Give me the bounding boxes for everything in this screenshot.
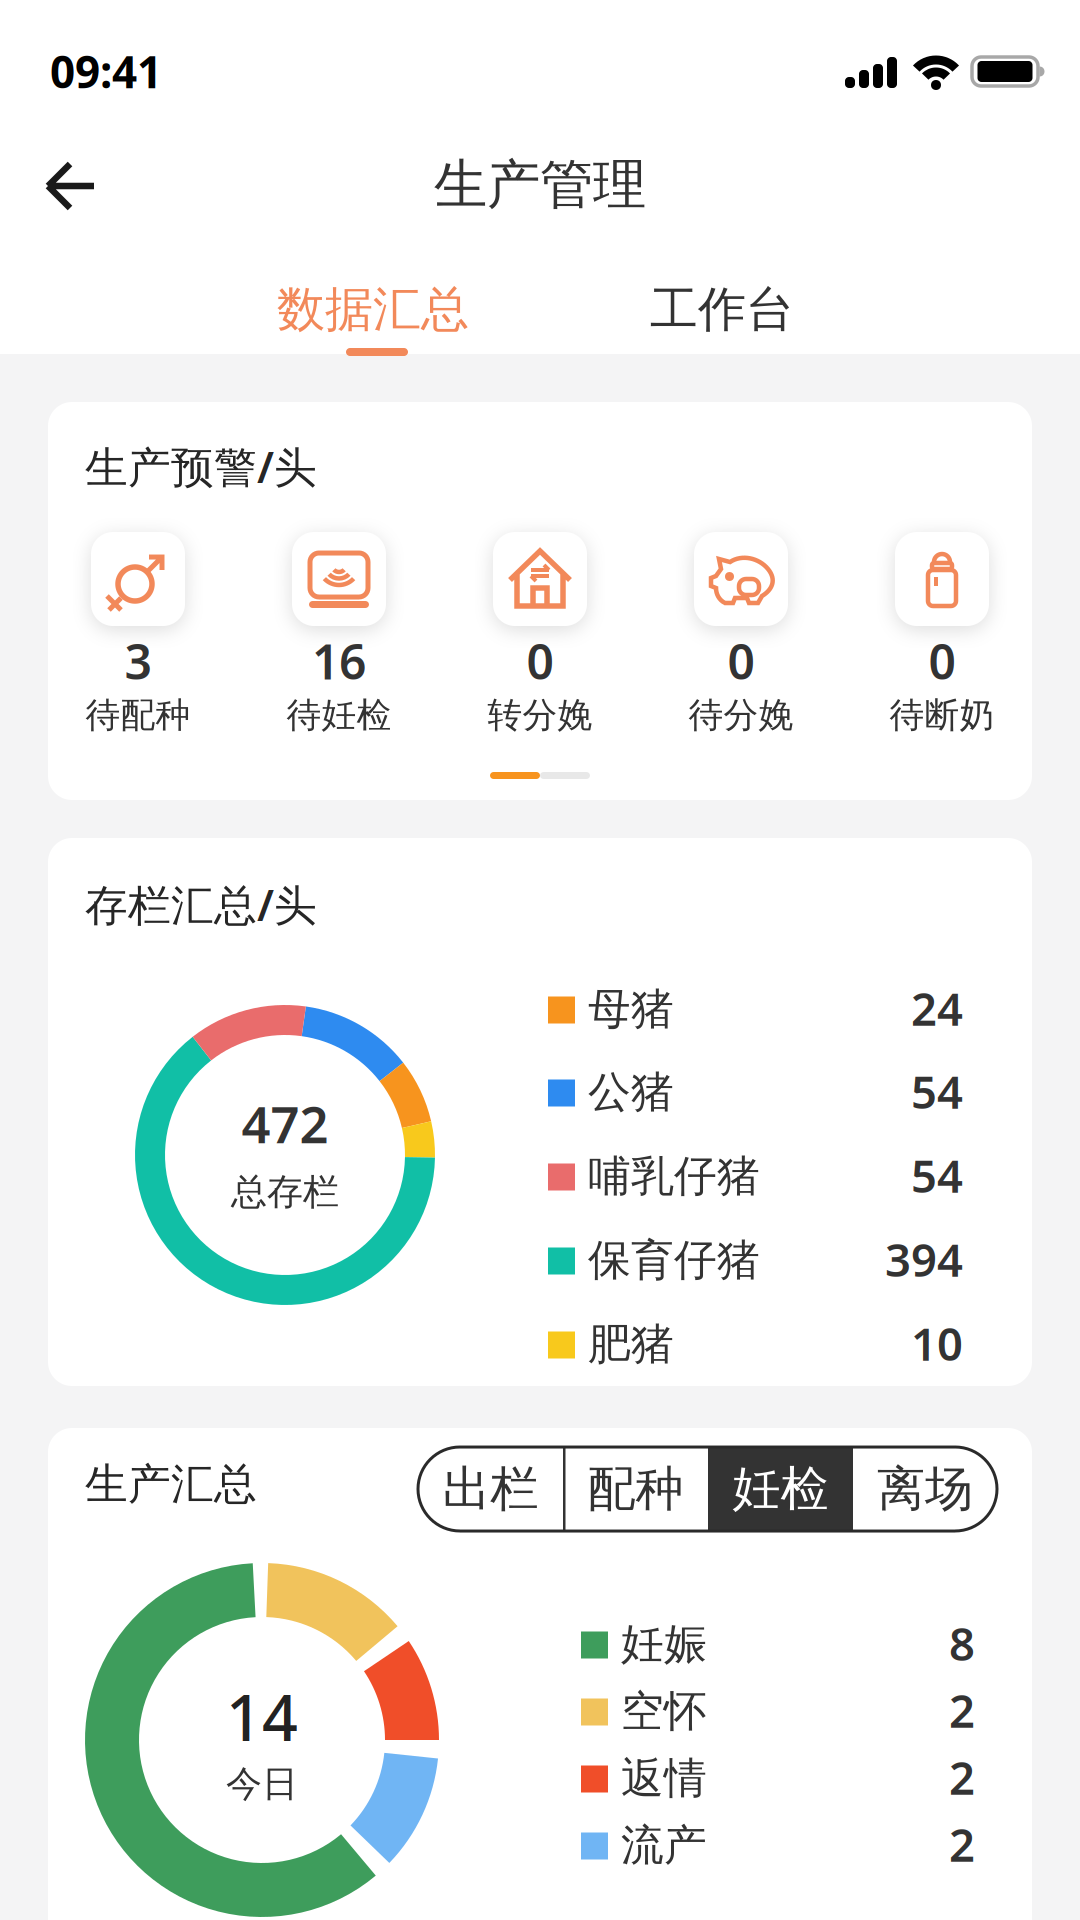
staticText: 母猪: [588, 983, 674, 1035]
staticText: 生产汇总: [85, 1458, 257, 1510]
button[interactable]: 数据汇总: [243, 280, 503, 339]
staticText: 10: [911, 1313, 963, 1373]
staticText: 保育仔猪: [588, 1234, 760, 1286]
staticText: 2: [949, 1680, 975, 1740]
staticText: 空怀: [621, 1685, 707, 1737]
staticText: 数据汇总: [277, 280, 469, 339]
staticText: 出栏: [442, 1459, 538, 1518]
staticText: 24: [911, 978, 963, 1038]
button[interactable]: 配种: [563, 1447, 708, 1531]
staticText: 配种: [587, 1459, 683, 1518]
staticText: 待妊检: [286, 694, 391, 737]
button[interactable]: 待妊检: [259, 532, 419, 742]
staticText: 待配种: [85, 694, 190, 737]
staticText: 妊娠: [621, 1618, 707, 1670]
staticText: 2: [949, 1747, 975, 1807]
staticText: 工作台: [650, 280, 794, 339]
button[interactable]: 待分娩: [661, 532, 821, 742]
button[interactable]: 出栏: [418, 1447, 563, 1531]
staticText: 16: [312, 629, 366, 693]
staticText: 今日: [226, 1762, 298, 1806]
staticText: 存栏汇总/头: [85, 876, 317, 933]
staticText: 生产预警/头: [85, 438, 317, 495]
staticText: 8: [949, 1613, 975, 1673]
staticText: 返情: [621, 1752, 707, 1804]
staticText: 妊检: [732, 1459, 828, 1518]
staticText: 54: [911, 1061, 963, 1121]
staticText: 公猪: [588, 1066, 674, 1118]
button[interactable]: 待断奶: [862, 532, 1022, 742]
button[interactable]: 工作台: [612, 280, 832, 339]
staticText: 394: [885, 1229, 963, 1289]
staticText: 哺乳仔猪: [588, 1150, 760, 1202]
staticText: 0: [526, 629, 553, 693]
staticText: 09:41: [50, 42, 162, 100]
staticText: 0: [727, 629, 754, 693]
staticText: 0: [928, 629, 955, 693]
staticText: 流产: [621, 1819, 707, 1871]
button[interactable]: 待配种: [58, 532, 218, 742]
staticText: 待断奶: [889, 694, 994, 737]
button[interactable]: 转分娩: [460, 532, 620, 742]
staticText: 54: [911, 1145, 963, 1205]
staticText: 生产管理: [434, 152, 646, 217]
button[interactable]: 离场: [853, 1447, 997, 1531]
staticText: 14: [226, 1675, 298, 1758]
staticText: 472: [241, 1090, 328, 1157]
staticText: 待分娩: [688, 694, 793, 737]
staticText: 总存栏: [231, 1170, 339, 1214]
staticText: 2: [949, 1814, 975, 1874]
button[interactable]: 妊检: [708, 1447, 853, 1531]
staticText: 肥猪: [588, 1318, 674, 1370]
staticText: 转分娩: [487, 694, 592, 737]
staticText: 离场: [877, 1459, 973, 1518]
staticText: 3: [124, 629, 151, 693]
button[interactable]: Back: [38, 160, 104, 212]
